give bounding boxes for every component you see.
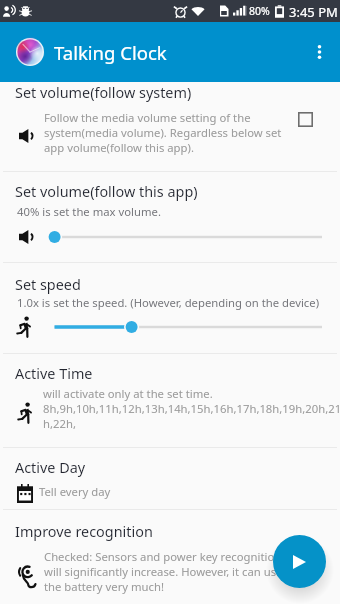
button[interactable]: Slider — [40, 316, 330, 338]
staticText: Follow the media volume setting of the s… — [44, 110, 282, 155]
staticText: Set volume(follow system) — [15, 83, 192, 103]
staticText: Talking Clock — [54, 40, 167, 65]
button[interactable]: More options — [298, 31, 340, 73]
button[interactable]: Play — [273, 535, 326, 588]
staticText: 40% is set the max volume. — [17, 204, 161, 219]
staticText: will activate only at the set time. 8h,9… — [43, 386, 340, 431]
button[interactable]: Slider — [40, 226, 330, 248]
staticText: Active Day — [15, 458, 86, 478]
staticText: Set volume(follow this app) — [15, 182, 198, 202]
button[interactable] — [0, 263, 340, 353]
staticText: 3:45 PM — [289, 3, 338, 21]
button[interactable] — [0, 172, 340, 262]
staticText: 80% — [249, 4, 270, 18]
staticText: Set speed — [15, 275, 81, 295]
button[interactable] — [0, 82, 340, 171]
button[interactable] — [0, 510, 340, 604]
button[interactable] — [0, 354, 340, 447]
button[interactable] — [0, 448, 340, 509]
staticText: Checked: Sensors and power key recogniti… — [44, 549, 283, 594]
button[interactable]: Follow system volume checkbox — [289, 103, 321, 135]
staticText: Improve recognition — [15, 522, 153, 542]
staticText: Active Time — [15, 364, 93, 384]
staticText: Tell every day — [39, 484, 111, 499]
staticText: 1.0x is set the speed. (However, dependi… — [17, 295, 320, 310]
